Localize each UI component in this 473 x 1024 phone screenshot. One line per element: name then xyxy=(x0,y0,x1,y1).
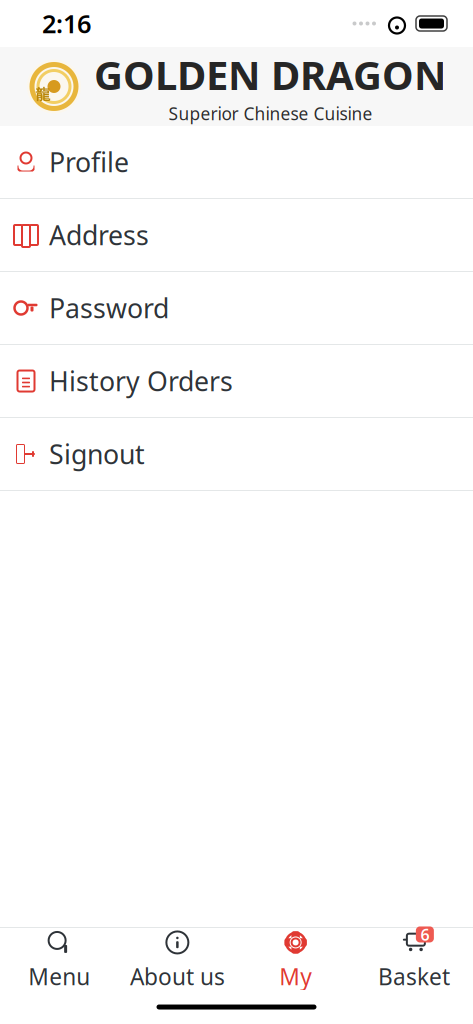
staticText: Superior Chinese Cuisine xyxy=(168,102,372,125)
button[interactable]: Signout xyxy=(0,418,473,491)
button[interactable]: 6 xyxy=(355,920,473,997)
button[interactable]: My xyxy=(236,920,355,997)
staticText: Menu xyxy=(28,961,90,991)
staticText: Profile xyxy=(49,144,129,180)
button[interactable]: History Orders xyxy=(0,345,473,418)
staticText: Signout xyxy=(49,436,145,472)
staticText: History Orders xyxy=(49,363,233,399)
staticText: About us xyxy=(130,961,225,991)
button[interactable]: Address xyxy=(0,199,473,272)
staticText: Basket xyxy=(378,961,450,991)
button[interactable]: Menu xyxy=(0,920,118,997)
button[interactable]: About us xyxy=(118,920,236,997)
staticText: 龍 xyxy=(35,85,50,103)
button[interactable]: Password xyxy=(0,272,473,345)
button[interactable]: Profile xyxy=(0,126,473,199)
staticText: 2:16 xyxy=(42,7,91,40)
staticText: GOLDEN DRAGON xyxy=(94,48,447,101)
staticText: Password xyxy=(49,290,169,326)
staticText: 6 xyxy=(420,924,429,945)
staticText: Address xyxy=(49,217,149,253)
staticText: My xyxy=(279,961,312,991)
